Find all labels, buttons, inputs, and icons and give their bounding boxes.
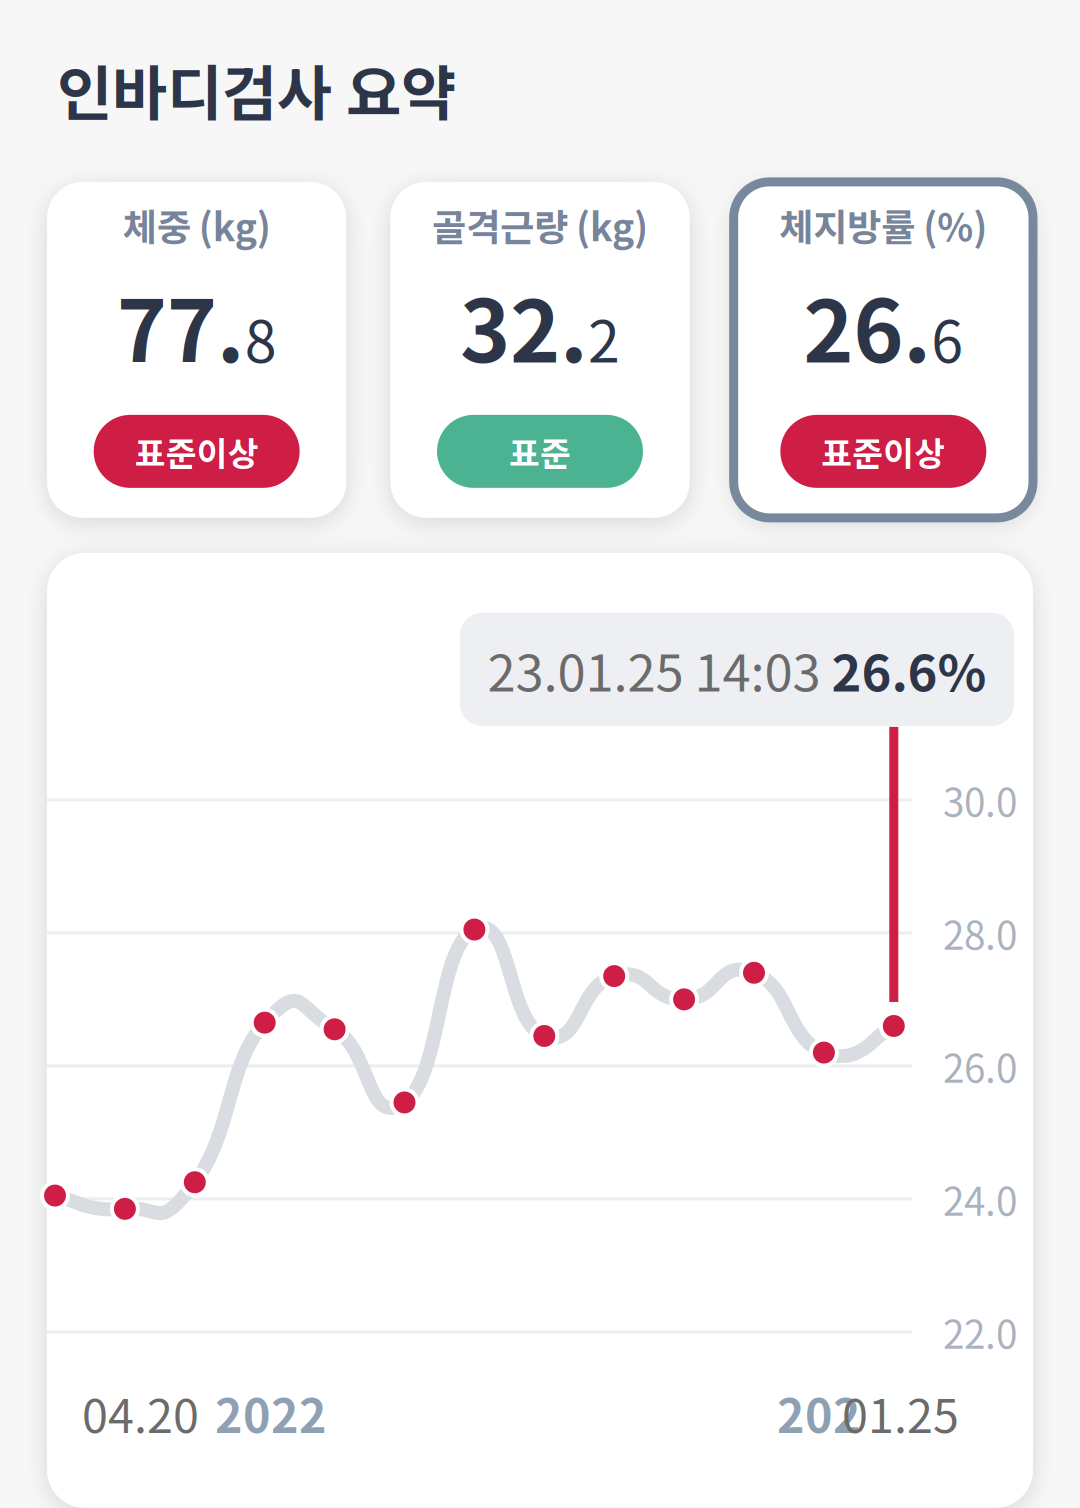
button[interactable]: 골격근량 (kg)	[390, 182, 690, 518]
staticText: 26.0	[943, 1038, 1017, 1094]
staticText: 체지방률 (%)	[779, 198, 987, 252]
staticText: 23.01.25 14:03	[487, 633, 831, 706]
staticText: 체중 (kg)	[123, 198, 271, 252]
staticText: 26.6%	[831, 633, 986, 706]
staticText: 202	[777, 1379, 861, 1446]
staticText: 인바디검사 요약	[57, 46, 456, 133]
staticText: 24.0	[943, 1171, 1017, 1227]
staticText: 22.0	[943, 1304, 1017, 1360]
staticText: 26.6	[803, 265, 963, 386]
staticText: 30.0	[943, 772, 1017, 828]
staticText: 표준	[509, 427, 571, 475]
staticText: 01.25	[842, 1379, 959, 1446]
staticText: 골격근량 (kg)	[432, 198, 648, 252]
button[interactable]: 체지방률 (%)	[734, 182, 1033, 518]
staticText: 77.8	[117, 265, 277, 386]
staticText: 2022	[215, 1379, 327, 1446]
staticText: 04.20	[82, 1379, 199, 1446]
button[interactable]: 체중 (kg)	[47, 182, 346, 518]
staticText: 표준이상	[135, 427, 259, 475]
staticText: 32.2	[460, 265, 620, 386]
staticText: 표준이상	[821, 427, 945, 475]
staticText: 28.0	[943, 905, 1017, 961]
